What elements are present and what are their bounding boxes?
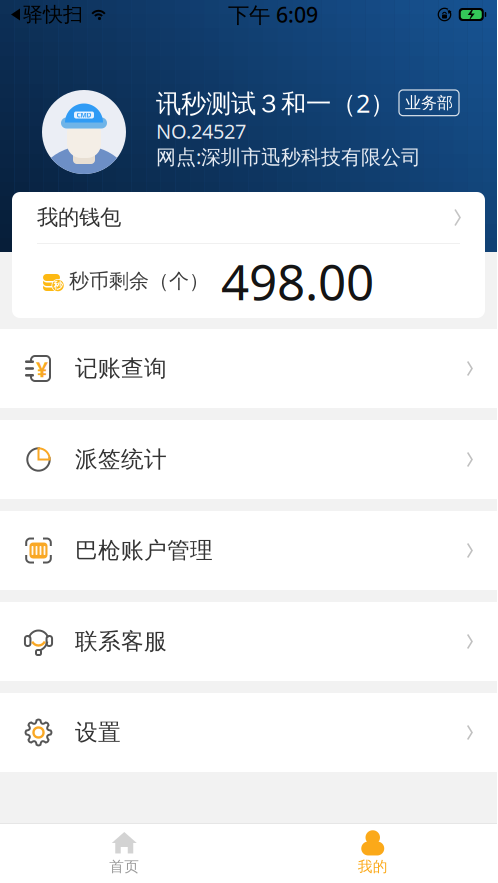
- staticText: 联系客服: [75, 628, 167, 655]
- button[interactable]: 我的: [248, 824, 497, 883]
- staticText: NO.24527: [156, 118, 246, 144]
- staticText: 业务部: [405, 93, 453, 113]
- staticText: 下午 6:09: [228, 0, 318, 29]
- staticText: 派签统计: [75, 446, 167, 473]
- staticText: CMD: [76, 111, 91, 119]
- staticText: 讯秒测试３和一（2）: [156, 86, 395, 120]
- button[interactable]: 联系客服: [0, 602, 497, 681]
- button[interactable]: ¥: [0, 329, 497, 408]
- button[interactable]: 巴枪账户管理: [0, 511, 497, 590]
- staticText: 秒币剩余（个）: [69, 269, 209, 293]
- staticText: 我的钱包: [37, 204, 121, 231]
- staticText: 驿快扫: [23, 2, 83, 27]
- button[interactable]: 设置: [0, 693, 497, 772]
- button[interactable]: 派签统计: [0, 420, 497, 499]
- button[interactable]: 首页: [0, 824, 248, 883]
- staticText: 设置: [75, 719, 121, 746]
- button[interactable]: 我的钱包: [12, 192, 485, 243]
- staticText: 巴枪账户管理: [75, 537, 213, 564]
- staticText: 我的: [358, 857, 388, 875]
- staticText: 秒: [53, 280, 62, 291]
- staticText: 记账查询: [75, 355, 167, 382]
- staticText: 网点:深圳市迅秒科技有限公司: [156, 143, 421, 170]
- staticText: 498.00: [221, 248, 374, 314]
- staticText: ¥: [36, 355, 48, 383]
- staticText: 首页: [109, 857, 139, 875]
